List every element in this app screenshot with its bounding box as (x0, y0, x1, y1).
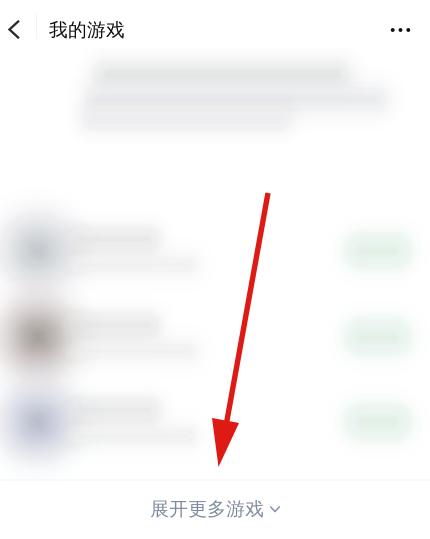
button[interactable] (0, 208, 430, 294)
staticText: 展开更多游戏 (150, 497, 264, 520)
button[interactable]: Back (0, 5, 31, 53)
button[interactable]: More (372, 6, 428, 54)
button[interactable] (0, 294, 430, 380)
button[interactable] (0, 379, 430, 465)
button[interactable]: 我的游戏 (32, 6, 142, 54)
staticText: 我的游戏 (49, 18, 125, 41)
button[interactable]: 展开更多游戏 (0, 480, 430, 538)
